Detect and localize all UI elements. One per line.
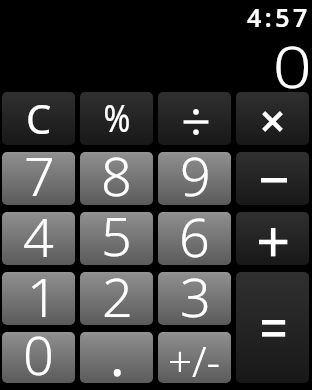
staticText: 2 xyxy=(102,259,133,333)
staticText: 6 xyxy=(179,199,210,273)
button[interactable] xyxy=(2,212,75,265)
button[interactable] xyxy=(236,92,309,145)
staticText: 4:57 xyxy=(247,0,311,34)
button[interactable] xyxy=(158,92,231,145)
staticText: +/- xyxy=(168,332,221,389)
staticText: 8 xyxy=(101,138,132,212)
staticText: 5 xyxy=(101,198,132,272)
staticText: C xyxy=(26,91,52,145)
button[interactable] xyxy=(80,272,153,325)
button[interactable] xyxy=(80,92,153,145)
button[interactable] xyxy=(80,152,153,205)
button[interactable] xyxy=(158,212,231,265)
staticText: . xyxy=(110,318,125,390)
staticText: 4 xyxy=(23,199,54,273)
staticText: % xyxy=(103,91,131,143)
button[interactable] xyxy=(158,272,231,325)
staticText: 7 xyxy=(24,138,55,212)
button[interactable] xyxy=(236,152,309,205)
staticText: 3 xyxy=(180,259,211,333)
staticText: 1 xyxy=(27,259,58,333)
button[interactable] xyxy=(158,152,231,205)
staticText: 0 xyxy=(273,27,312,105)
button[interactable] xyxy=(2,92,75,145)
button[interactable] xyxy=(236,212,309,265)
staticText: 0 xyxy=(23,317,54,390)
button[interactable] xyxy=(2,152,75,205)
button[interactable] xyxy=(2,272,75,325)
button[interactable] xyxy=(80,212,153,265)
button[interactable] xyxy=(80,332,153,383)
button[interactable] xyxy=(2,332,75,383)
button[interactable] xyxy=(236,272,309,383)
staticText: 9 xyxy=(180,138,211,212)
button[interactable] xyxy=(158,332,231,383)
